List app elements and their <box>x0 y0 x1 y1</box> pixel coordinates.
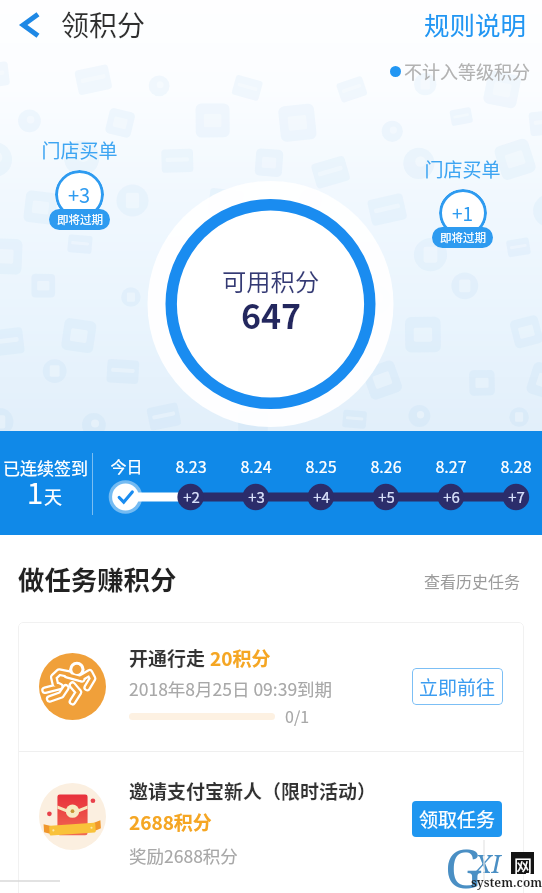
staticText: 8.24 <box>240 454 272 477</box>
button[interactable]: 8.28 <box>476 454 542 477</box>
staticText: 即将过期 <box>440 229 486 246</box>
staticText: 网 <box>514 852 532 874</box>
staticText: 不计入等级积分 <box>404 58 530 84</box>
staticText: 今日 <box>110 454 143 477</box>
staticText: 8.23 <box>175 454 207 477</box>
staticText: 20积分 <box>210 644 271 672</box>
staticText: +6 <box>443 486 460 508</box>
button[interactable]: 规则说明 <box>424 5 527 42</box>
button[interactable]: 8.23 <box>151 454 231 477</box>
button[interactable]: 8.27 <box>411 454 491 477</box>
staticText: 已连续签到 <box>3 455 88 480</box>
staticText: 立即前往 <box>419 673 496 701</box>
staticText: G <box>445 832 483 893</box>
staticText: 1 <box>27 470 44 512</box>
staticText: 天 <box>44 483 62 509</box>
staticText: 做任务赚积分 <box>18 559 177 597</box>
staticText: 可用积分 <box>222 263 320 298</box>
staticText: 8.28 <box>500 454 532 477</box>
staticText: +1 <box>452 199 474 227</box>
staticText: 2688积分 <box>129 808 212 836</box>
button[interactable]: 邀请支付宝新人（限时活动） <box>18 752 524 881</box>
staticText: +3 <box>248 486 265 508</box>
button[interactable]: 领取任务 <box>412 801 502 837</box>
staticText: +7 <box>508 486 525 508</box>
staticText: 即将过期 <box>57 211 103 228</box>
staticText: 8.27 <box>435 454 467 477</box>
button[interactable]: 8.25 <box>281 454 361 477</box>
staticText: 8.25 <box>305 454 337 477</box>
staticText: 2018年8月25日 09:39到期 <box>129 676 333 701</box>
staticText: 领积分 <box>61 4 146 45</box>
staticText: 门店买单 <box>424 155 501 183</box>
staticText: 门店买单 <box>41 136 118 164</box>
staticText: 领取任务 <box>419 805 496 833</box>
staticText: +2 <box>183 486 200 508</box>
button[interactable]: 8.26 <box>346 454 426 477</box>
staticText: XI <box>475 846 501 880</box>
button[interactable]: 查看历史任务 <box>424 569 521 592</box>
button[interactable]: 8.24 <box>216 454 296 477</box>
staticText: +5 <box>378 486 395 508</box>
button[interactable]: 今日 <box>86 454 166 477</box>
staticText: 开通行走 <box>129 644 210 672</box>
staticText: 647 <box>241 290 302 339</box>
button[interactable]: Back <box>6 1 54 49</box>
staticText: 0/1 <box>285 704 310 727</box>
button[interactable]: 开通行走 <box>18 622 524 751</box>
staticText: 8.26 <box>370 454 402 477</box>
staticText: +3 <box>68 180 91 209</box>
staticText: system.com <box>471 874 542 890</box>
staticText: 邀请支付宝新人（限时活动） <box>129 777 377 805</box>
staticText: 奖励2688积分 <box>129 843 238 868</box>
button[interactable]: 立即前往 <box>412 668 503 705</box>
staticText: +4 <box>313 486 330 508</box>
